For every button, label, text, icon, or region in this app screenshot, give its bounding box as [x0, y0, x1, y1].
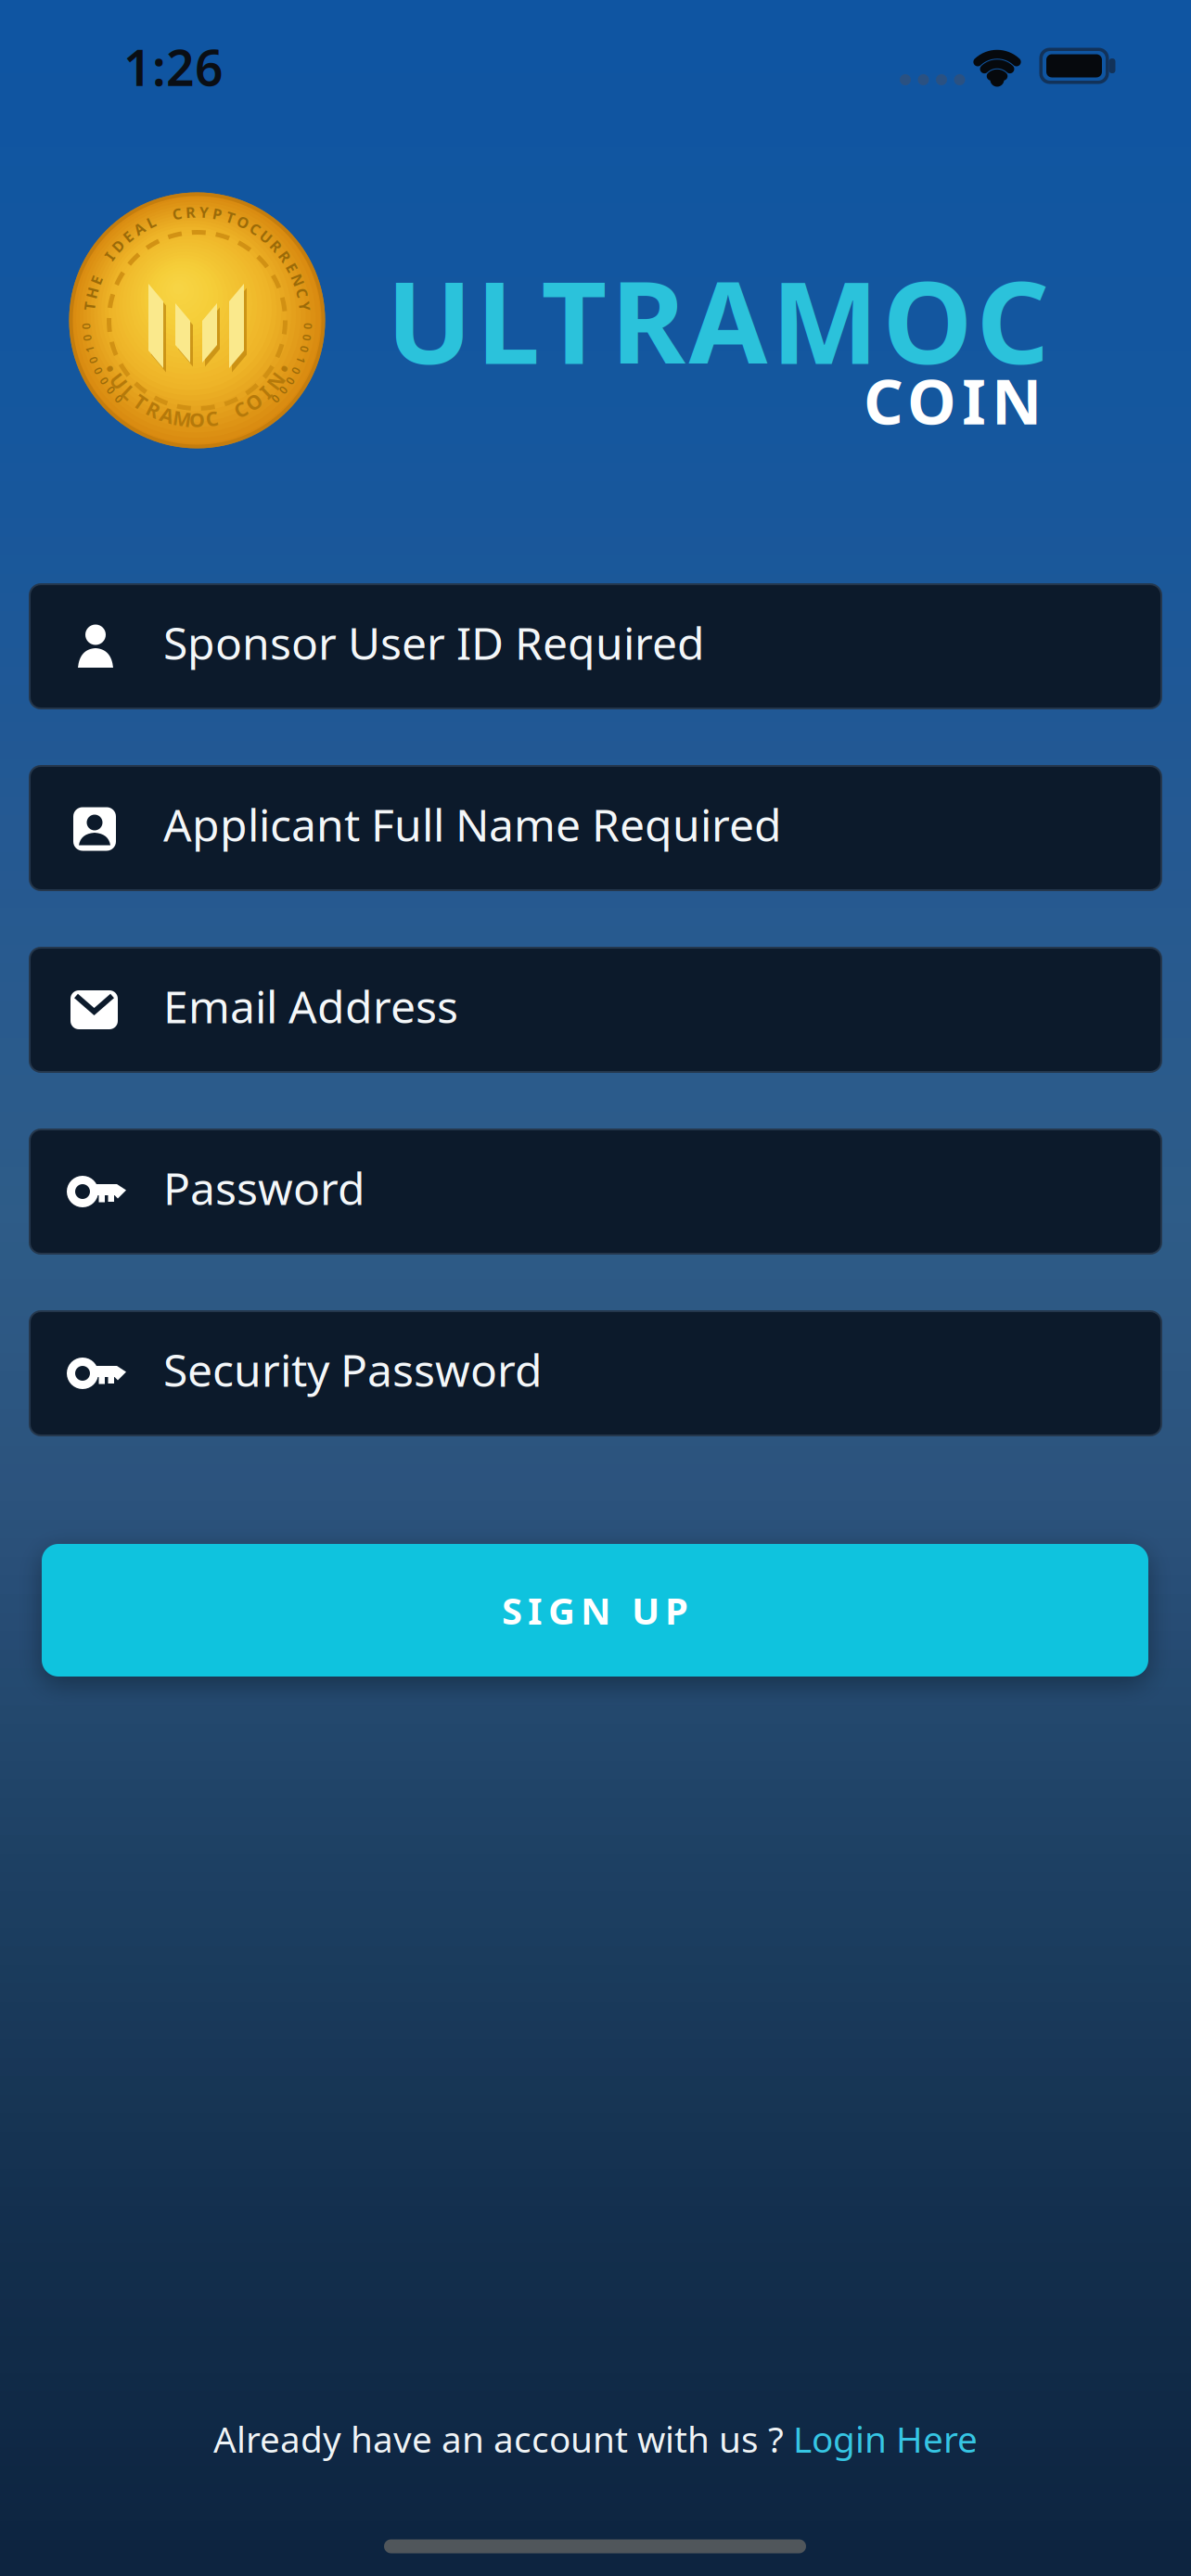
- staticText: [100, 258, 104, 278]
- staticText: R: [280, 246, 289, 266]
- staticText: A: [134, 219, 144, 238]
- staticText: A: [160, 402, 174, 428]
- staticText: 0: [101, 374, 107, 388]
- staticText: T: [85, 296, 94, 316]
- staticText: M: [173, 405, 191, 432]
- staticText: U: [261, 227, 272, 246]
- staticText: 0: [83, 319, 89, 334]
- staticText: L: [123, 379, 134, 405]
- staticText: Y: [300, 296, 309, 316]
- staticText: •: [280, 355, 288, 382]
- staticText: 1:26: [123, 34, 224, 100]
- staticText: Password: [163, 1158, 365, 1217]
- staticText: D: [113, 236, 124, 256]
- staticText: C: [250, 219, 260, 238]
- staticText: Sponsor User ID Required: [163, 613, 705, 672]
- staticText: 0: [287, 374, 294, 388]
- staticText: T: [135, 389, 146, 415]
- staticText: R: [271, 236, 281, 256]
- staticText: E: [288, 258, 296, 278]
- staticText: I: [262, 379, 269, 405]
- staticText: O: [246, 389, 262, 415]
- staticText: Login Here: [793, 2415, 978, 2463]
- staticText: H: [87, 283, 98, 303]
- staticText: E: [92, 270, 101, 290]
- staticText: 1: [86, 342, 93, 357]
- staticText: C: [297, 283, 307, 303]
- staticText: L: [147, 212, 155, 232]
- staticText: 0: [280, 383, 287, 398]
- staticText: 0: [301, 342, 308, 357]
- staticText: O: [237, 212, 249, 232]
- staticText: 0: [90, 353, 96, 368]
- staticText: 0: [115, 392, 122, 406]
- staticText: 0: [84, 330, 90, 345]
- staticText: 0: [273, 392, 279, 406]
- staticText: T: [226, 207, 235, 227]
- staticText: R: [186, 202, 195, 222]
- staticText: Y: [199, 202, 209, 222]
- staticText: N: [268, 368, 283, 394]
- staticText: P: [213, 204, 222, 224]
- staticText: 0: [95, 363, 101, 378]
- staticText: C: [234, 396, 247, 423]
- staticText: COIN: [864, 360, 1042, 442]
- staticText: [162, 207, 166, 227]
- staticText: Applicant Full Name Required: [163, 795, 782, 854]
- staticText: 0: [293, 363, 300, 378]
- staticText: N: [292, 270, 304, 290]
- staticText: 0: [107, 383, 114, 398]
- staticText: C: [206, 405, 219, 432]
- staticText: Already have an account with us ?: [213, 2415, 793, 2463]
- staticText: I: [107, 246, 112, 266]
- staticText: C: [172, 204, 182, 224]
- staticText: Email Address: [163, 977, 458, 1036]
- staticText: •: [107, 355, 114, 382]
- staticText: Security Password: [163, 1340, 543, 1399]
- staticText: ULTRAMOC: [386, 244, 1050, 395]
- staticText: 0: [305, 319, 311, 334]
- staticText: 1: [298, 353, 304, 368]
- staticText: U: [111, 368, 126, 394]
- staticText: SIGN UP: [502, 1586, 688, 1635]
- staticText: O: [189, 406, 205, 433]
- staticText: 0: [304, 330, 310, 345]
- staticText: R: [147, 396, 160, 423]
- staticText: [224, 402, 230, 428]
- staticText: E: [124, 227, 132, 246]
